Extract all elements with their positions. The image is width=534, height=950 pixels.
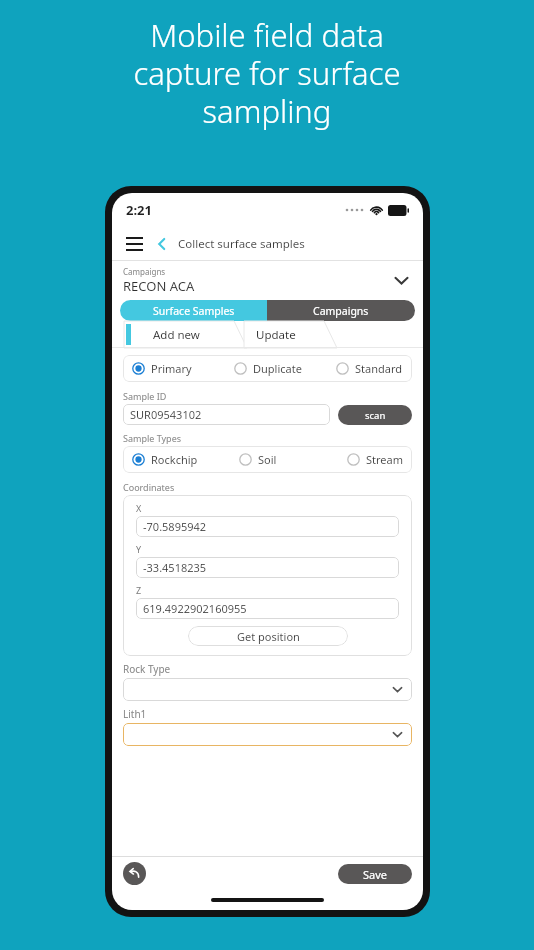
button[interactable] — [123, 678, 412, 701]
button[interactable]: 619.4922902160955 — [136, 598, 399, 619]
button[interactable]: Primary — [132, 361, 234, 376]
staticText: 619.4922902160955 — [143, 601, 247, 616]
button[interactable] — [123, 723, 412, 746]
staticText: SUR09543102 — [130, 407, 202, 422]
button[interactable]: Campaigns — [267, 300, 415, 321]
staticText: -33.4518235 — [143, 560, 207, 575]
button[interactable]: -70.5895942 — [136, 516, 399, 537]
button[interactable]: scan — [338, 405, 412, 425]
staticText: Standard — [355, 361, 403, 376]
staticText: Campaigns — [313, 304, 369, 318]
button[interactable]: Update — [232, 321, 320, 348]
staticText: Duplicate — [253, 361, 302, 376]
button[interactable]: Save — [338, 864, 412, 884]
button[interactable]: Soil — [239, 452, 347, 467]
staticText: scan — [365, 409, 386, 422]
staticText: Coordinates — [123, 481, 175, 493]
staticText: X — [136, 502, 142, 514]
staticText: Lith1 — [123, 707, 147, 721]
staticText: RECON ACA — [123, 277, 195, 295]
staticText: Surface Samples — [153, 304, 235, 318]
staticText: Sample Types — [123, 432, 182, 444]
button[interactable]: Back — [152, 234, 172, 254]
button[interactable]: Menu — [123, 233, 145, 255]
staticText: Rock Type — [123, 662, 171, 676]
button[interactable]: Stream — [347, 452, 403, 467]
staticText: Update — [256, 327, 296, 343]
staticText: Collect surface samples — [178, 236, 305, 252]
staticText: Mobile field data capture for surface sa… — [0, 14, 534, 132]
staticText: Stream — [366, 452, 403, 467]
staticText: Z — [136, 584, 142, 596]
button[interactable]: Get position — [188, 626, 348, 646]
button[interactable]: Surface Samples — [120, 300, 267, 321]
staticText: Campaigns — [123, 266, 166, 277]
staticText: Sample ID — [123, 390, 167, 402]
button[interactable]: -33.4518235 — [136, 557, 399, 578]
staticText: Primary — [151, 361, 192, 376]
staticText: Soil — [258, 452, 277, 467]
staticText: Rockchip — [151, 452, 198, 467]
button[interactable]: Add new — [112, 321, 232, 348]
staticText: Y — [136, 543, 142, 555]
button[interactable]: Duplicate — [234, 361, 336, 376]
staticText: Save — [363, 867, 388, 882]
button[interactable]: Campaigns — [112, 261, 423, 300]
button[interactable]: Standard — [336, 361, 403, 376]
staticText: -70.5895942 — [143, 519, 207, 534]
button[interactable]: Undo — [123, 862, 146, 885]
staticText: Get position — [237, 629, 300, 644]
staticText: Add new — [153, 327, 200, 343]
staticText: 2:21 — [126, 201, 152, 219]
button[interactable]: SUR09543102 — [123, 404, 330, 425]
button[interactable]: Rockchip — [132, 452, 239, 467]
